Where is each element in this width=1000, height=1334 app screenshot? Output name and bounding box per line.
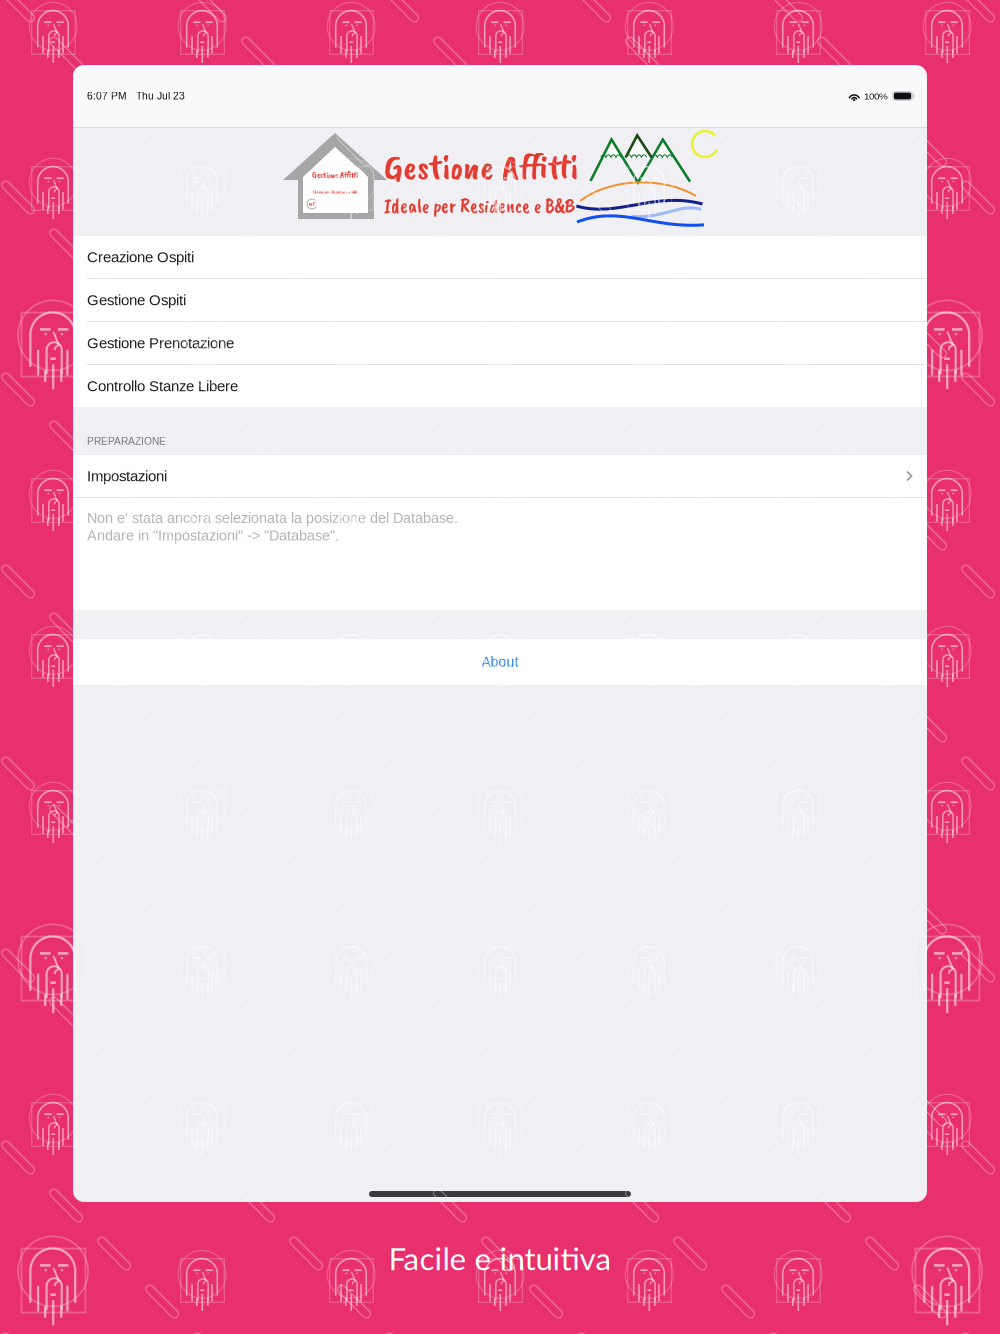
- staticText: Impostazioni: [87, 468, 167, 484]
- button[interactable]: Gestione Prenotazione: [73, 322, 927, 364]
- staticText: Thu Jul 23: [136, 90, 185, 102]
- staticText: Gestione Prenotazione: [87, 335, 234, 351]
- staticText: Creazione Ospiti: [87, 249, 194, 265]
- staticText: PREPARAZIONE: [87, 436, 166, 447]
- button[interactable]: Gestione Ospiti: [73, 279, 927, 321]
- staticText: About: [481, 654, 518, 670]
- staticText: Ideale per Residence e B&B: [384, 193, 575, 218]
- button[interactable]: Controllo Stanze Libere: [73, 365, 927, 407]
- staticText: Gestione Ospiti: [87, 292, 186, 308]
- staticText: Non e' stata ancora selezionata la posiz…: [87, 510, 458, 526]
- button[interactable]: About: [73, 639, 927, 685]
- button[interactable]: Creazione Ospiti: [73, 236, 927, 278]
- button[interactable]: Impostazioni: [73, 455, 927, 497]
- staticText: Controllo Stanze Libere: [87, 378, 238, 394]
- staticText: 100%: [864, 90, 888, 101]
- staticText: Gestione Affitti: [312, 169, 358, 181]
- staticText: MF: [308, 201, 315, 207]
- staticText: Facile e intuitiva: [388, 1239, 611, 1277]
- staticText: Gestione Affitti: [384, 144, 578, 189]
- staticText: Andare in "Impostazioni" -> "Database".: [87, 528, 339, 544]
- staticText: Ideale per Residence e B&B: [312, 189, 357, 195]
- staticText: 6:07 PM: [87, 90, 127, 102]
